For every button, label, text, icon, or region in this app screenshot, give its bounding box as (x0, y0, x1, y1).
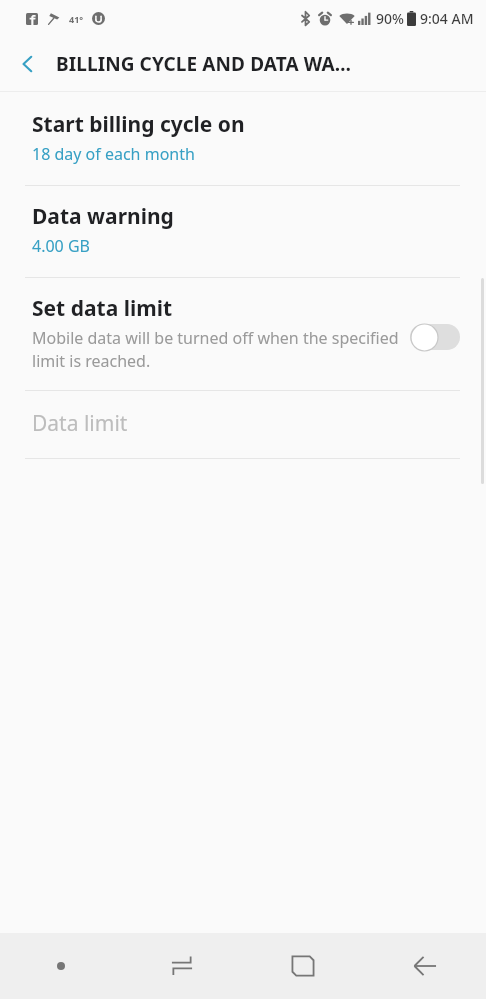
button[interactable]: Data warning (0, 186, 486, 277)
button[interactable]: Navigate up (0, 36, 56, 92)
staticText: 90% (376, 9, 404, 28)
staticText: 18 day of each month (32, 143, 195, 165)
staticText: 9:04 AM (420, 9, 474, 28)
staticText: Data warning (32, 202, 174, 231)
staticText: Data limit (32, 409, 128, 438)
staticText: Mobile data will be turned off when the … (32, 327, 400, 372)
button[interactable]: Start billing cycle on (0, 92, 486, 185)
staticText: BILLING CYCLE AND DATA WA… (56, 51, 352, 77)
button[interactable]: Set data limit toggle (410, 322, 464, 352)
button[interactable]: Back (364, 933, 486, 999)
button[interactable]: Set data limit (0, 278, 486, 390)
button[interactable]: Home (242, 933, 364, 999)
staticText: 41° (69, 13, 84, 25)
staticText: Set data limit (32, 294, 173, 323)
staticText: 4.00 GB (32, 235, 90, 257)
button[interactable]: Data limit (0, 391, 486, 458)
button[interactable]: Recent apps (121, 933, 242, 999)
staticText: Start billing cycle on (32, 110, 245, 139)
